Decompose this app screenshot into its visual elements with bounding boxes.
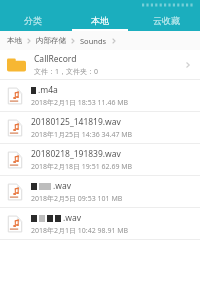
button[interactable]: .wav [0,208,200,240]
staticText: Sounds [80,36,107,46]
staticText: 云收藏 [153,15,180,26]
button[interactable]: 分类 [0,9,66,31]
button[interactable]: 20180125_141819.wav [0,112,200,144]
button[interactable]: 本地 [5,36,24,45]
staticText: .m4a [38,84,58,96]
button[interactable]: CallRecord [0,50,200,80]
button[interactable]: 云收藏 [133,9,200,31]
staticText: 2018年2月18日 19:51 62.69 MB [31,162,133,172]
staticText: 本地 [91,15,109,26]
button[interactable]: 本地 [66,9,133,31]
button[interactable]: .wav [0,176,200,208]
button[interactable]: .m4a [0,80,200,112]
staticText: .wav [53,180,72,192]
staticText: 2018年2月1日 10:42 98.91 MB [31,226,129,236]
staticText: 本地 [7,36,22,45]
button[interactable]: Sounds [78,36,109,46]
staticText: 20180125_141819.wav [31,116,121,128]
staticText: 内部存储 [36,36,66,45]
staticText: 2018年2月1日 18:53 11.46 MB [31,98,129,108]
staticText: 分类 [24,15,42,26]
staticText: CallRecord [34,53,77,65]
staticText: 2018年1月25日 14:36 34.47 MB [31,130,133,140]
staticText: 20180218_191839.wav [31,148,121,160]
button[interactable]: 20180218_191839.wav [0,144,200,176]
staticText: 2018年2月5日 09:53 101 MB [31,194,123,204]
staticText: .wav [63,212,82,224]
staticText: 文件：1，文件夹：0 [34,67,99,77]
button[interactable]: 内部存储 [34,36,68,45]
